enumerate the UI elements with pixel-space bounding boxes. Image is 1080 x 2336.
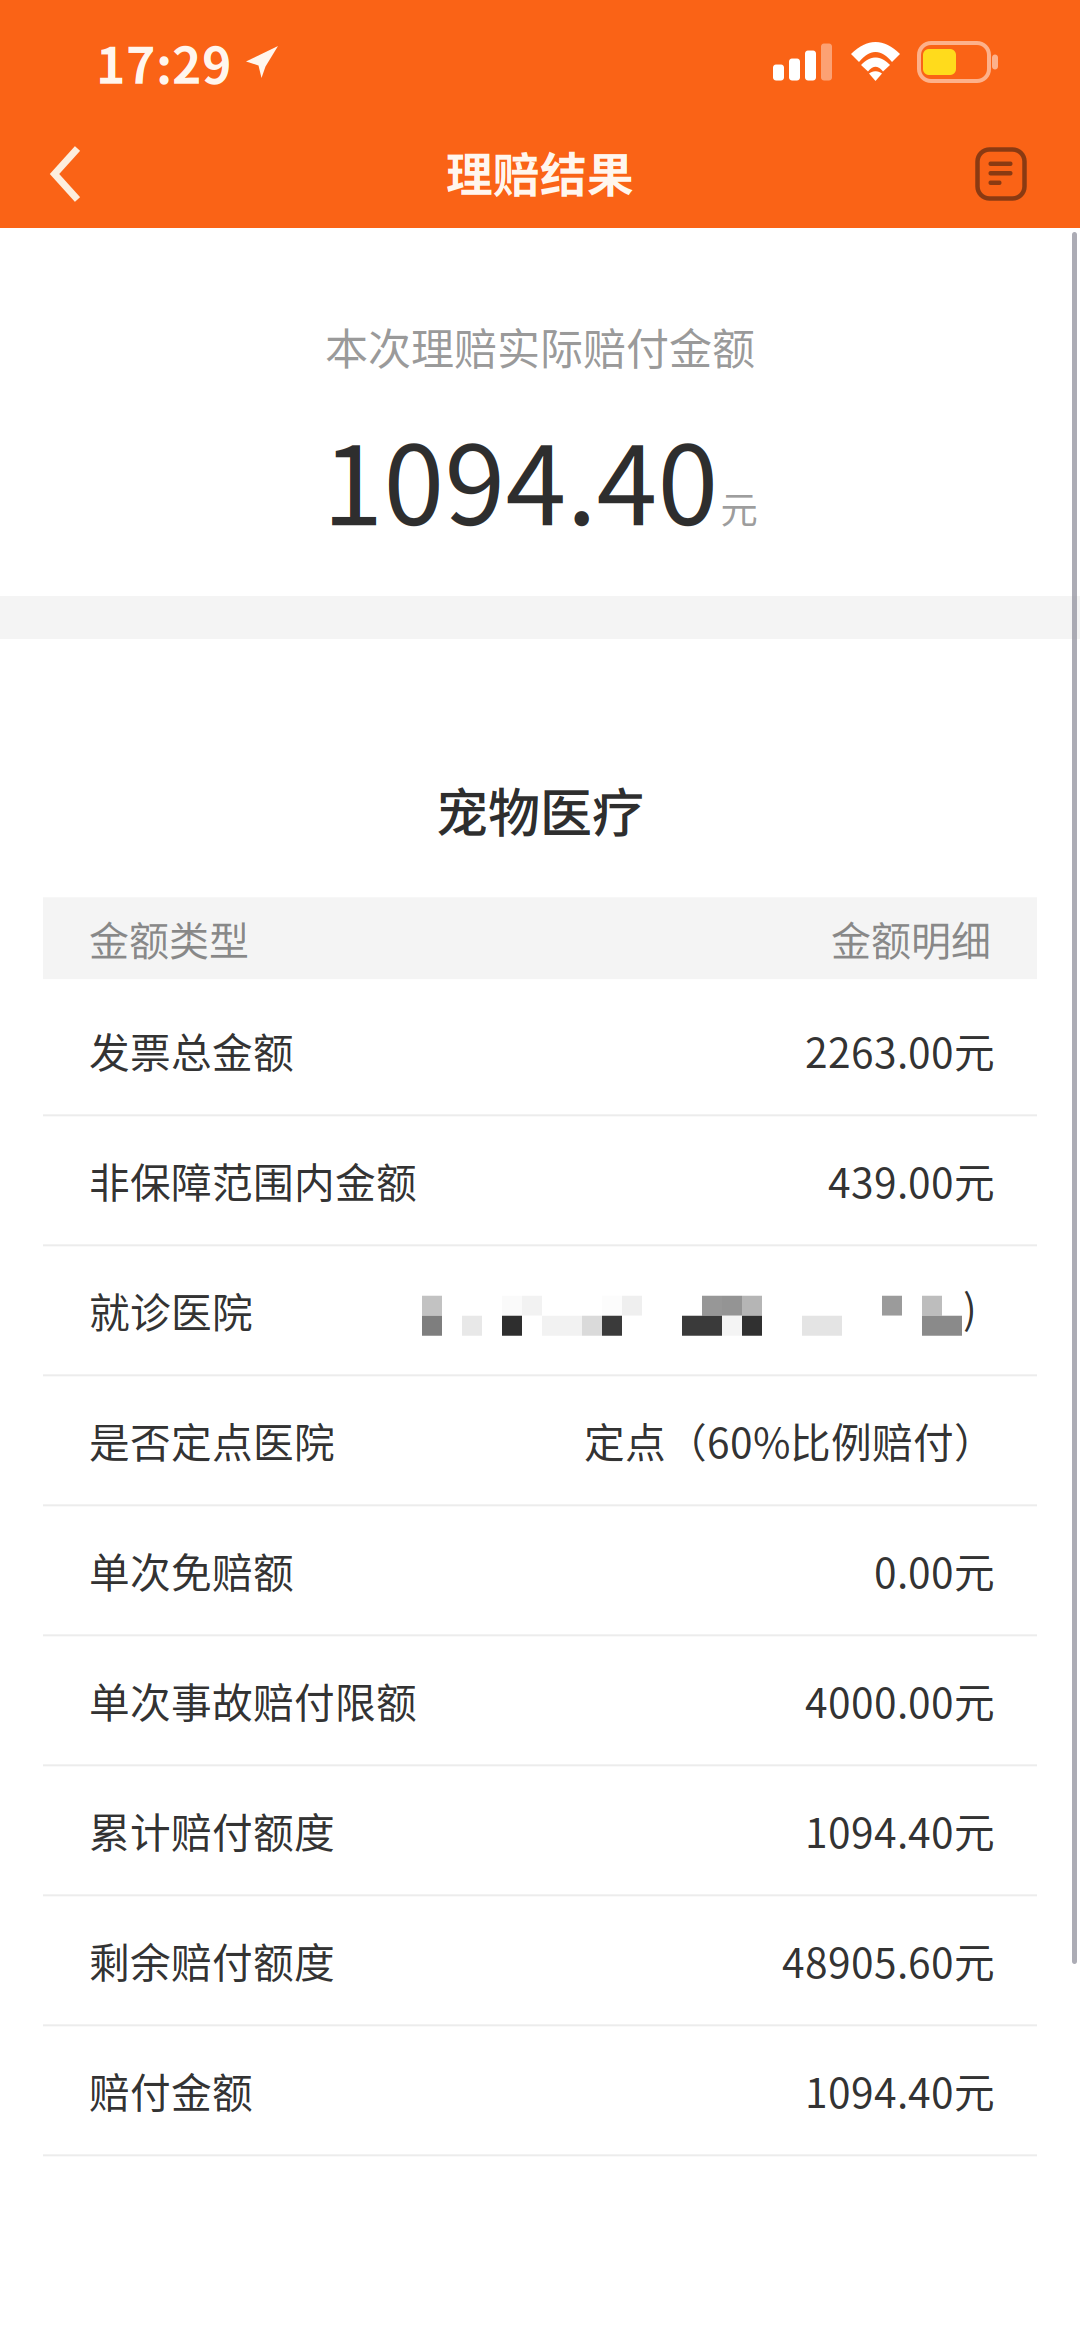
staticText: 17:29 bbox=[96, 26, 232, 98]
staticText: 理赔结果 bbox=[446, 138, 634, 205]
staticText: 单次事故赔付限额 bbox=[89, 1671, 417, 1730]
staticText: 发票总金额 bbox=[89, 1021, 294, 1080]
staticText: 4000.00元 bbox=[805, 1671, 995, 1730]
button[interactable]: Back bbox=[0, 120, 132, 228]
staticText: 1094.40元 bbox=[805, 1801, 995, 1860]
staticText: ) bbox=[963, 1277, 977, 1336]
staticText: 1094.40元 bbox=[805, 2061, 995, 2120]
staticText: 宠物医疗 bbox=[436, 772, 644, 847]
staticText: 剩余赔付额度 bbox=[89, 1931, 335, 1990]
button[interactable]: Claim details bbox=[932, 120, 1080, 228]
staticText: 赔付金额 bbox=[89, 2061, 253, 2120]
staticText: 本次理赔实际赔付金额 bbox=[325, 315, 755, 377]
staticText: 48905.60元 bbox=[782, 1931, 995, 1990]
staticText: 439.00元 bbox=[828, 1151, 995, 1210]
staticText: 1094.40 bbox=[322, 398, 718, 557]
staticText: 定点（60%比例赔付） bbox=[584, 1411, 995, 1470]
staticText: 非保障范围内金额 bbox=[89, 1151, 417, 1210]
staticText: 累计赔付额度 bbox=[89, 1801, 335, 1860]
staticText: 单次免赔额 bbox=[89, 1541, 294, 1600]
staticText: 就诊医院 bbox=[89, 1281, 253, 1340]
staticText: 是否定点医院 bbox=[89, 1411, 335, 1470]
staticText: 金额类型 bbox=[89, 909, 249, 967]
staticText: 元 bbox=[720, 481, 757, 535]
staticText: 0.00元 bbox=[874, 1541, 995, 1600]
staticText: 金额明细 bbox=[831, 909, 991, 967]
staticText: 2263.00元 bbox=[805, 1021, 995, 1080]
